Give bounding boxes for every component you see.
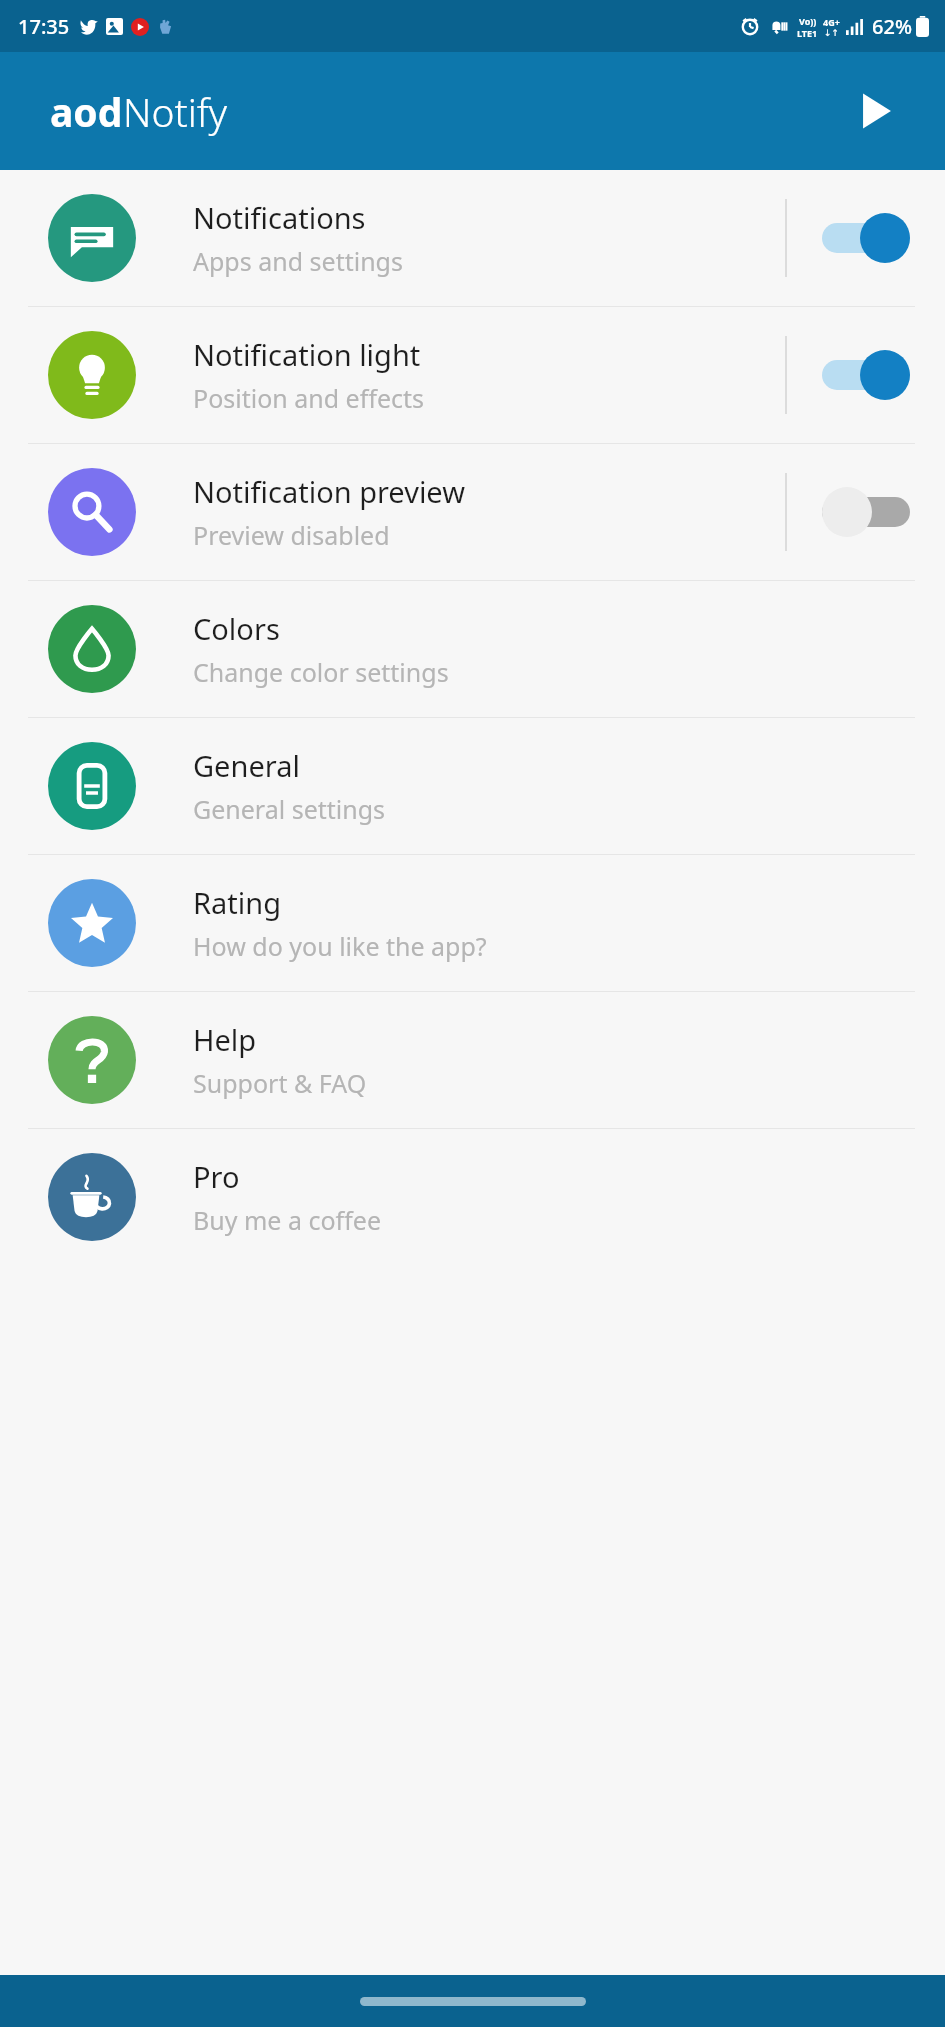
- staticText: General settings: [193, 792, 386, 826]
- staticText: Change color settings: [193, 655, 449, 689]
- staticText: Apps and settings: [193, 244, 403, 278]
- staticText: LTE1: [797, 27, 818, 39]
- staticText: How do you like the app?: [193, 929, 487, 963]
- staticText: Support & FAQ: [193, 1066, 367, 1100]
- staticText: Rating: [193, 883, 282, 922]
- staticText: Notification preview: [193, 472, 465, 511]
- staticText: Colors: [193, 609, 280, 648]
- button[interactable]: Notification preview: [0, 444, 945, 580]
- button[interactable]: General: [0, 718, 945, 854]
- staticText: Vo)): [799, 15, 817, 27]
- button[interactable]: Rating: [0, 855, 945, 991]
- staticText: General: [193, 746, 300, 785]
- staticText: Notifications: [193, 198, 366, 237]
- staticText: Pro: [193, 1157, 240, 1196]
- staticText: 17:35: [18, 13, 70, 40]
- button[interactable]: Notifications: [0, 170, 945, 306]
- staticText: 62%: [872, 13, 912, 40]
- button[interactable]: Play: [843, 78, 909, 144]
- staticText: Position and effects: [193, 381, 424, 415]
- staticText: aod: [50, 85, 123, 138]
- button[interactable]: Help: [0, 992, 945, 1128]
- staticText: 4G+: [823, 16, 840, 28]
- staticText: Help: [193, 1020, 257, 1059]
- staticText: Buy me a coffee: [193, 1203, 381, 1237]
- button[interactable]: Toggle Notification light: [787, 307, 945, 443]
- staticText: Notification light: [193, 335, 421, 374]
- button[interactable]: Pro: [0, 1129, 945, 1265]
- staticText: ↓↑: [824, 28, 840, 38]
- button[interactable]: Colors: [0, 581, 945, 717]
- button[interactable]: Toggle Notifications: [787, 170, 945, 306]
- staticText: Preview disabled: [193, 518, 390, 552]
- staticText: Notify: [123, 85, 228, 138]
- button[interactable]: Toggle Notification preview: [787, 444, 945, 580]
- button[interactable]: Notification light: [0, 307, 945, 443]
